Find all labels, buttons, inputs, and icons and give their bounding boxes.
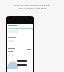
staticText: miss a renewal date again: [18, 6, 47, 9]
button[interactable]: App preview: [6, 16, 34, 72]
staticText: Track all subscriptions and never: [14, 3, 50, 6]
